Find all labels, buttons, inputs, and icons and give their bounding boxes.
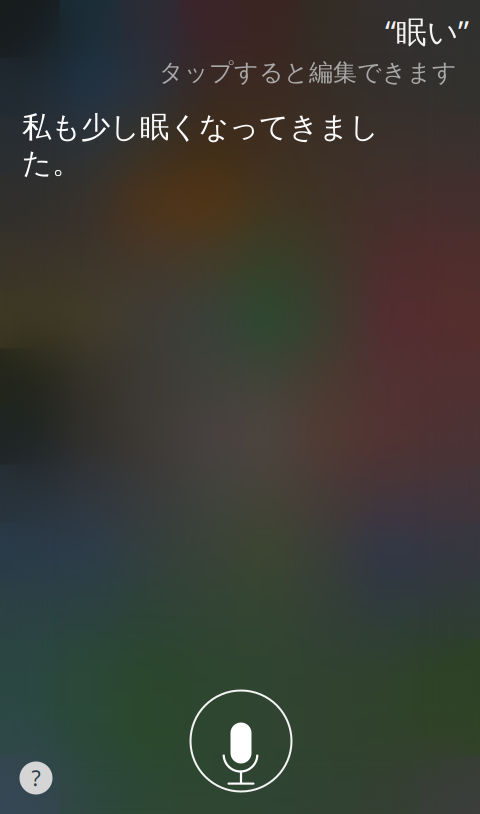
staticText: ? [31, 764, 40, 792]
staticText: 私も少し眠くなってきました。 [22, 109, 379, 181]
staticText: タップすると編集できます [159, 58, 457, 87]
button[interactable]: Help [17, 759, 55, 797]
button[interactable]: Microphone [188, 688, 294, 794]
staticText: “眠い” [385, 11, 469, 52]
